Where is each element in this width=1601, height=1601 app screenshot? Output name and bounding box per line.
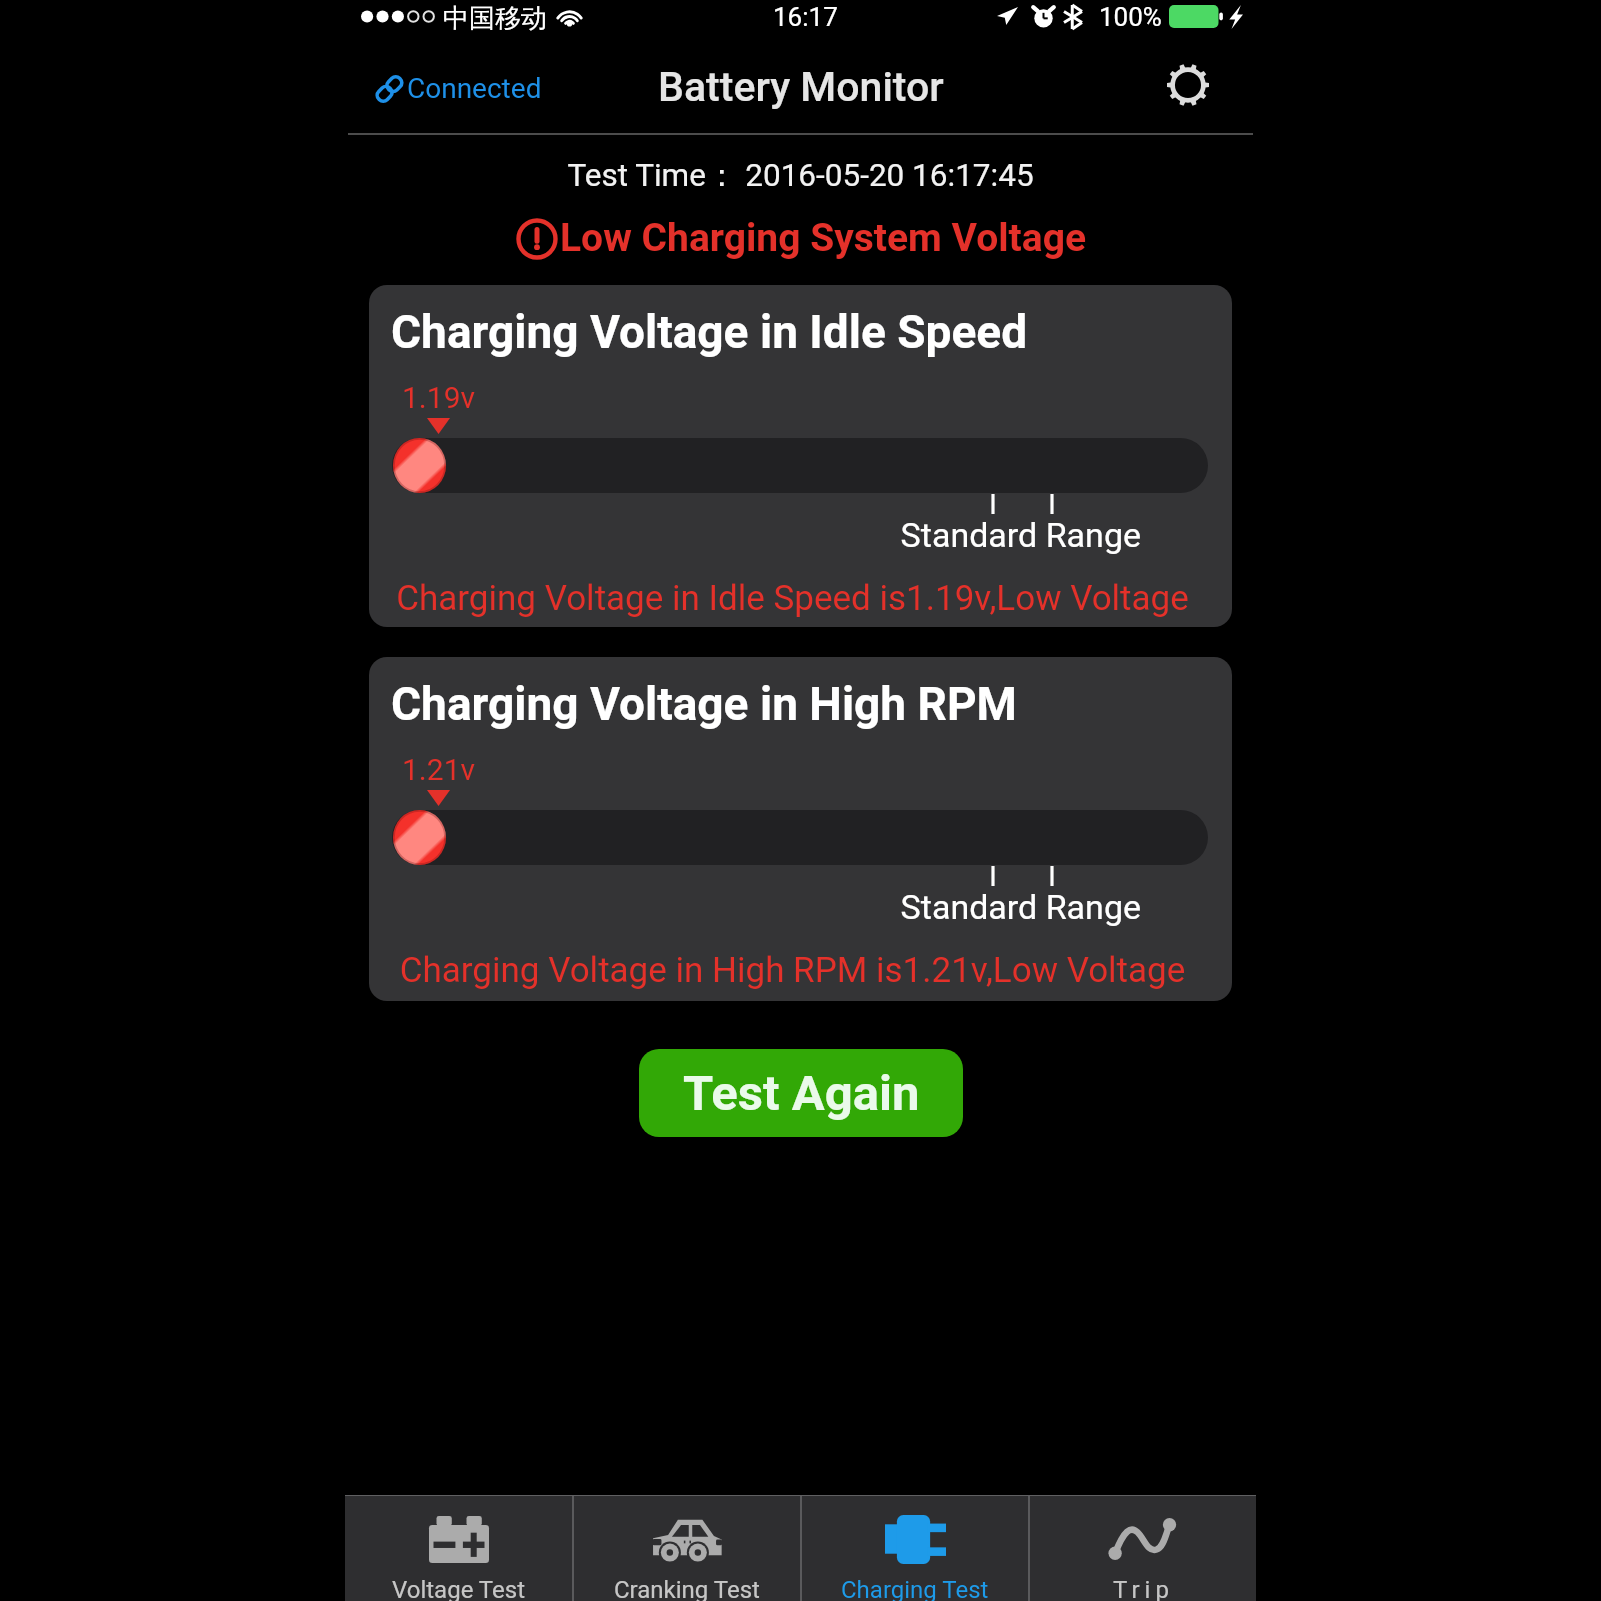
staticText: 16:17: [773, 2, 838, 32]
staticText: Connected: [407, 72, 542, 105]
staticText: Trip: [1113, 1576, 1174, 1601]
button[interactable]: Test Again: [639, 1049, 963, 1137]
staticText: 1.19v: [402, 380, 476, 415]
staticText: Charging Voltage in High RPM is1.21v,Low…: [369, 950, 1216, 991]
staticText: Test Again: [683, 1065, 920, 1122]
button[interactable]: Connected: [374, 72, 542, 105]
staticText: 中国移动: [443, 2, 547, 35]
staticText: Charging Voltage in Idle Speed: [391, 305, 1028, 359]
button[interactable]: Charging Voltage in High RPM: [369, 657, 1232, 1001]
button[interactable]: Cranking Test: [574, 1495, 800, 1601]
staticText: Standard Range: [369, 515, 1141, 555]
staticText: Cranking Test: [614, 1576, 760, 1601]
staticText: Charging Voltage in Idle Speed is1.19v,L…: [369, 578, 1216, 619]
button[interactable]: Charging Test: [802, 1495, 1028, 1601]
staticText: Low Charging System Voltage: [560, 215, 1087, 261]
button[interactable]: Charging Voltage in Idle Speed: [369, 285, 1232, 627]
staticText: Standard Range: [369, 887, 1141, 927]
button[interactable]: Voltage Test: [345, 1495, 572, 1601]
staticText: Charging Voltage in High RPM: [391, 677, 1017, 731]
staticText: 100%: [1099, 2, 1162, 32]
staticText: Battery Monitor: [658, 63, 944, 111]
staticText: Test Time： 2016-05-20 16:17:45: [345, 156, 1256, 196]
button[interactable]: Settings: [1160, 57, 1216, 113]
button[interactable]: Trip: [1030, 1495, 1256, 1601]
staticText: Voltage Test: [392, 1576, 525, 1601]
staticText: 1.21v: [402, 752, 476, 787]
staticText: Charging Test: [841, 1576, 989, 1601]
